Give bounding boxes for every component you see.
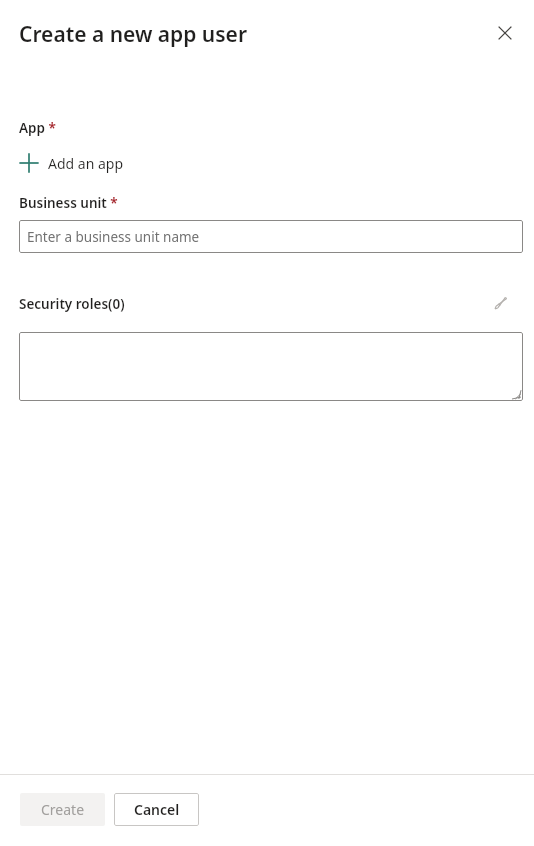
button[interactable]: Edit security roles	[486, 288, 516, 318]
button[interactable]: Cancel	[114, 793, 199, 826]
button[interactable]: Add an app	[19, 148, 124, 178]
staticText: Enter a business unit name	[27, 228, 200, 246]
staticText: App *	[19, 119, 56, 137]
button[interactable]	[19, 332, 523, 401]
button[interactable]: Create	[20, 793, 105, 826]
staticText: Security roles(0)	[19, 295, 125, 313]
staticText: Cancel	[134, 800, 180, 819]
button[interactable]: Close	[487, 15, 523, 51]
staticText: Create a new app user	[19, 20, 248, 49]
staticText: Create	[41, 800, 85, 819]
button[interactable]: Enter a business unit name	[19, 220, 523, 253]
staticText: Business unit *	[19, 194, 118, 212]
staticText: Add an app	[48, 154, 124, 173]
